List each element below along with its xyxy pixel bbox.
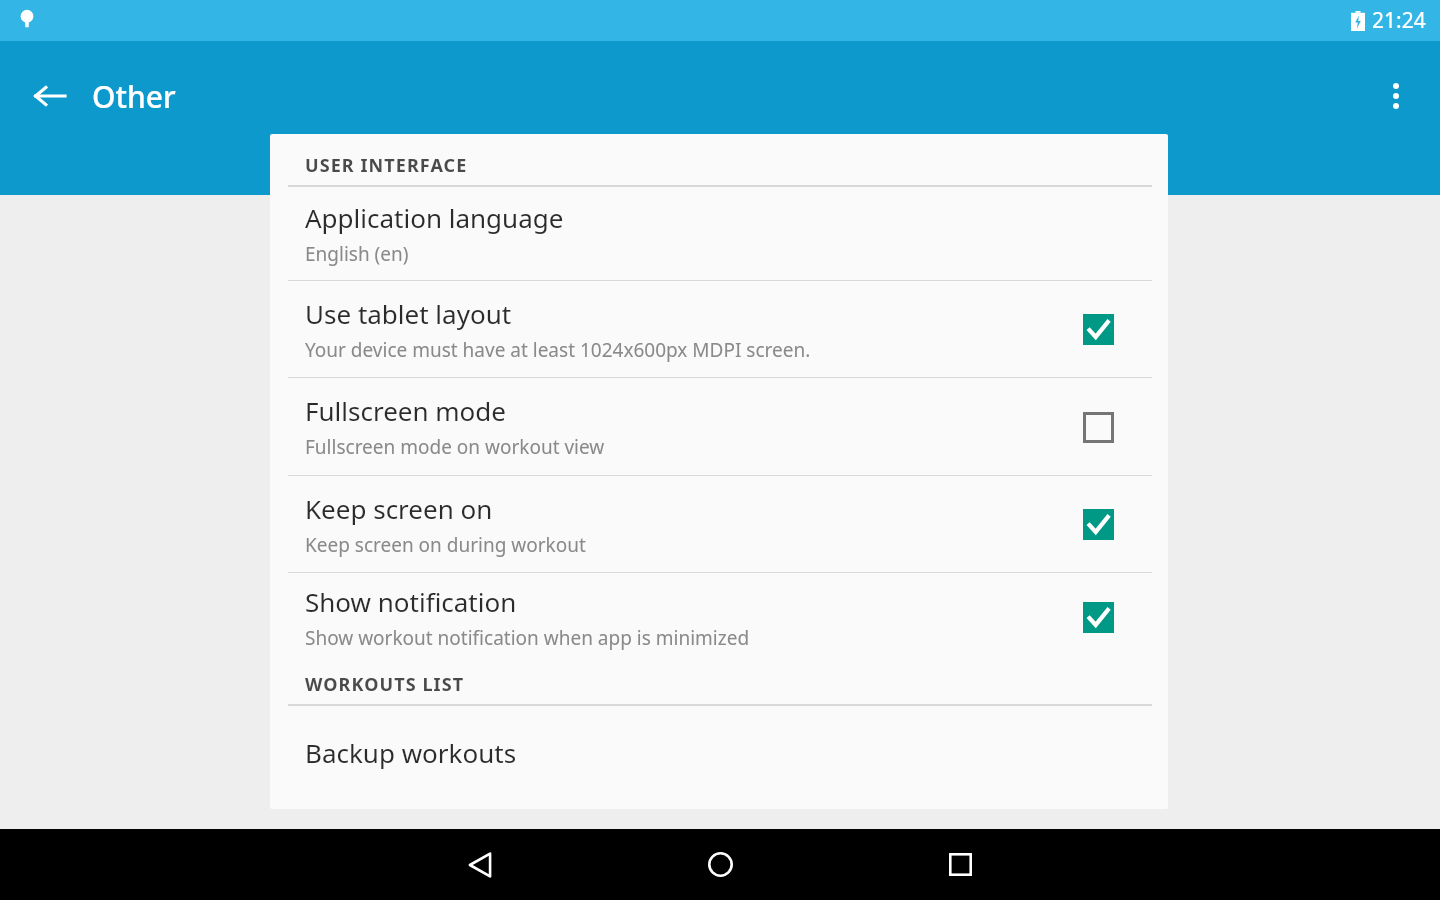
staticText: Fullscreen mode: [305, 393, 506, 428]
staticText: Backup workouts: [305, 735, 517, 770]
staticText: Show workout notification when app is mi…: [305, 625, 750, 651]
button[interactable]: Use tablet layout: [270, 281, 1168, 377]
staticText: Your device must have at least 1024x600p…: [305, 337, 811, 363]
button[interactable]: Navigate up: [18, 64, 82, 128]
staticText: Keep screen on during workout: [305, 532, 586, 558]
staticText: Use tablet layout: [305, 296, 512, 331]
button[interactable]: Fullscreen mode: [1072, 401, 1124, 453]
button[interactable]: Keep screen on: [1072, 498, 1124, 550]
staticText: WORKOUTS LIST: [305, 672, 465, 697]
button[interactable]: Use tablet layout: [1072, 303, 1124, 355]
staticText: English (en): [305, 241, 409, 267]
button[interactable]: Recent apps: [928, 829, 992, 900]
staticText: Other: [92, 76, 176, 117]
button[interactable]: Home: [688, 829, 752, 900]
button[interactable]: Back: [448, 829, 512, 900]
button[interactable]: Show notification: [1072, 591, 1124, 643]
staticText: Keep screen on: [305, 491, 493, 526]
button[interactable]: More options: [1364, 64, 1428, 128]
button[interactable]: Show notification: [270, 573, 1168, 661]
button[interactable]: Keep screen on: [270, 476, 1168, 572]
staticText: Fullscreen mode on workout view: [305, 434, 605, 460]
staticText: 21:24: [1372, 6, 1426, 35]
button[interactable]: Fullscreen mode: [270, 378, 1168, 475]
button[interactable]: Backup workouts: [270, 706, 1168, 798]
staticText: Application language: [305, 200, 564, 235]
staticText: Show notification: [305, 584, 517, 619]
staticText: USER INTERFACE: [305, 153, 468, 178]
button[interactable]: Application language: [270, 187, 1168, 280]
